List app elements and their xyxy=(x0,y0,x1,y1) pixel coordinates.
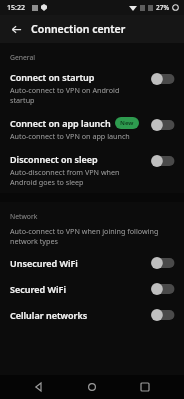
button[interactable]: Cellular networks xyxy=(0,302,184,328)
button[interactable]: Back xyxy=(5,18,27,40)
staticText: 15:22 xyxy=(7,3,25,13)
button[interactable]: Toggle xyxy=(150,282,176,296)
button[interactable]: Toggle xyxy=(150,118,176,132)
button[interactable]: Home xyxy=(78,375,106,399)
button[interactable]: Toggle xyxy=(150,154,176,168)
button[interactable]: Toggle xyxy=(150,308,176,322)
staticText: Unsecured WiFi xyxy=(10,257,150,269)
staticText: Network xyxy=(10,212,38,221)
staticText: 27% xyxy=(156,3,169,12)
button[interactable]: Connect on app launch xyxy=(0,111,184,147)
staticText: Cellular networks xyxy=(10,309,150,321)
staticText: Connect on startup xyxy=(10,71,95,83)
staticText: Auto-connect to VPN on Android startup xyxy=(10,85,142,105)
button[interactable]: Recent apps xyxy=(131,375,159,399)
staticText: General xyxy=(10,53,36,62)
button[interactable]: Connect on startup xyxy=(0,65,184,111)
button[interactable]: Toggle xyxy=(150,256,176,270)
staticText: New xyxy=(120,119,134,127)
button[interactable]: Unsecured WiFi xyxy=(0,250,184,276)
staticText: Disconnect on sleep xyxy=(10,153,98,165)
button[interactable]: Toggle xyxy=(150,72,176,86)
staticText: Connect on app launch xyxy=(10,117,111,129)
button[interactable]: Back xyxy=(25,375,53,399)
staticText: Auto-connect to VPN on app launch xyxy=(10,131,130,141)
staticText: Connection center xyxy=(31,22,126,36)
staticText: Auto-disconnect from VPN when Android go… xyxy=(10,167,142,187)
button[interactable]: Secured WiFi xyxy=(0,276,184,302)
button[interactable]: Disconnect on sleep xyxy=(0,147,184,193)
staticText: Secured WiFi xyxy=(10,283,150,295)
staticText: Auto-connect to VPN when joining followi… xyxy=(10,226,168,246)
